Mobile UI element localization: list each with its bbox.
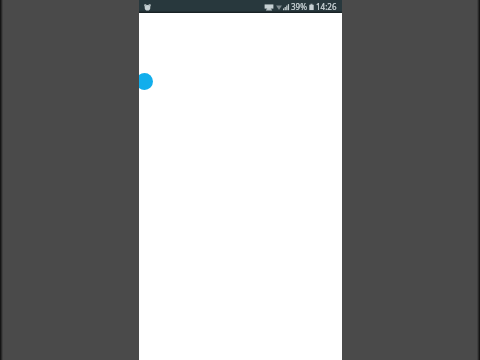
staticText: 39% [291,1,307,12]
button[interactable]: Action [139,73,153,90]
staticText: 14:26 [316,1,337,12]
